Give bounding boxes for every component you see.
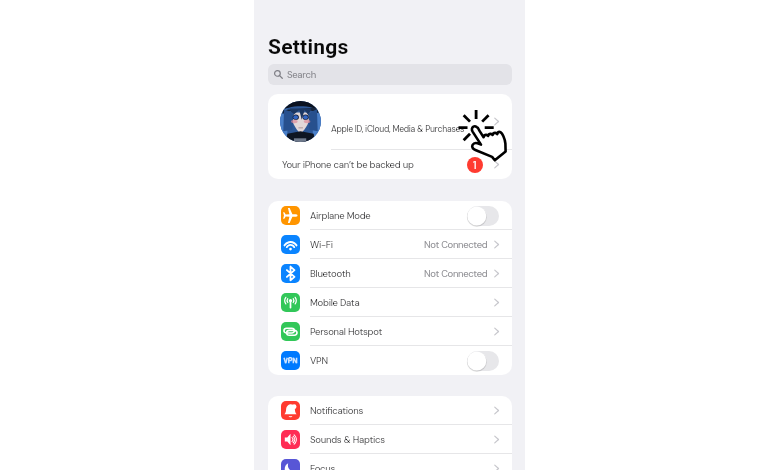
button[interactable]: Bluetooth [268, 259, 512, 288]
button[interactable]: Mobile Data [268, 288, 512, 317]
button[interactable]: Wi-Fi [268, 230, 512, 259]
button[interactable]: Notifications [268, 396, 512, 425]
staticText: Personal Hotspot [310, 326, 383, 338]
staticText: VPN [310, 355, 328, 367]
button[interactable]: Tap here [458, 110, 510, 164]
button[interactable]: Apple ID, iCloud, Media & Purchases [268, 94, 512, 149]
staticText: Sounds & Haptics [310, 434, 385, 446]
button[interactable]: Toggle VPN [467, 351, 499, 371]
staticText: Notifications [310, 405, 364, 417]
staticText: Search [287, 69, 316, 81]
staticText: Apple ID, iCloud, Media & Purchases [331, 123, 465, 134]
button[interactable]: Search [268, 64, 512, 85]
staticText: Not Connected [424, 239, 488, 251]
button[interactable]: Toggle Airplane Mode [467, 206, 499, 226]
staticText: Airplane Mode [310, 210, 371, 222]
button[interactable]: Sounds & Haptics [268, 425, 512, 454]
staticText: 1 [473, 159, 477, 172]
button[interactable]: Personal Hotspot [268, 317, 512, 346]
staticText: Wi-Fi [310, 239, 333, 251]
staticText: Settings [268, 35, 349, 60]
staticText: Focus [310, 463, 336, 470]
button[interactable]: Airplane Mode [268, 201, 512, 230]
button[interactable]: Focus [268, 454, 512, 470]
button[interactable]: Your iPhone can’t be backed up [268, 150, 512, 179]
staticText: Not Connected [424, 268, 488, 280]
staticText: Bluetooth [310, 268, 351, 280]
button[interactable]: VPN [268, 346, 512, 375]
staticText: Mobile Data [310, 297, 360, 309]
staticText: Your iPhone can’t be backed up [282, 159, 414, 171]
